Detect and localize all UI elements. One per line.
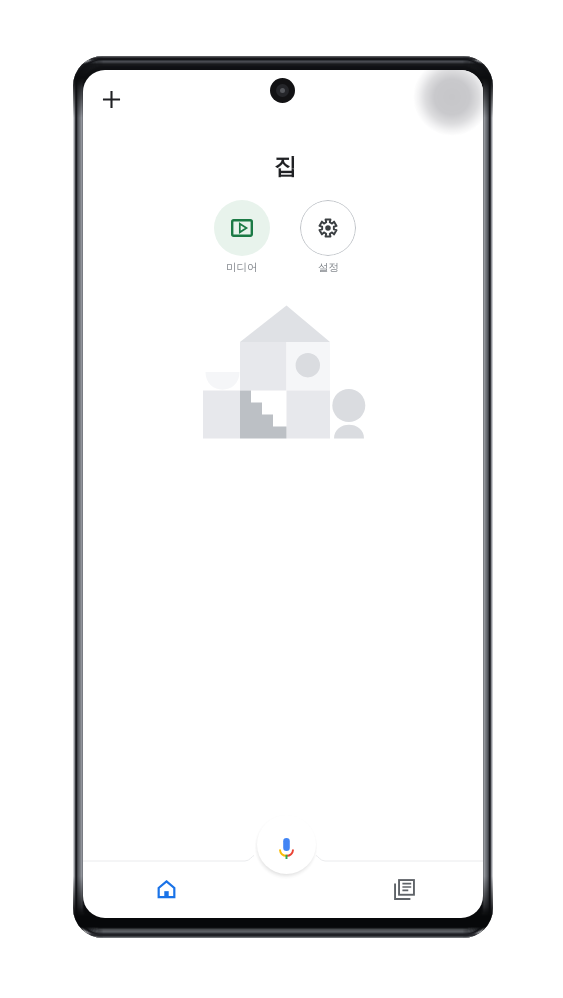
staticText: 설정 [318, 261, 339, 274]
button[interactable]: 설정 [300, 200, 356, 274]
staticText: 미디어 [226, 261, 258, 274]
button[interactable]: Google Assistant [257, 815, 316, 874]
button[interactable]: Feed [380, 865, 428, 913]
staticText: 집 [274, 152, 297, 181]
button[interactable]: Add device [91, 79, 131, 119]
button[interactable]: 미디어 [214, 200, 270, 274]
button[interactable]: Home [142, 865, 190, 913]
